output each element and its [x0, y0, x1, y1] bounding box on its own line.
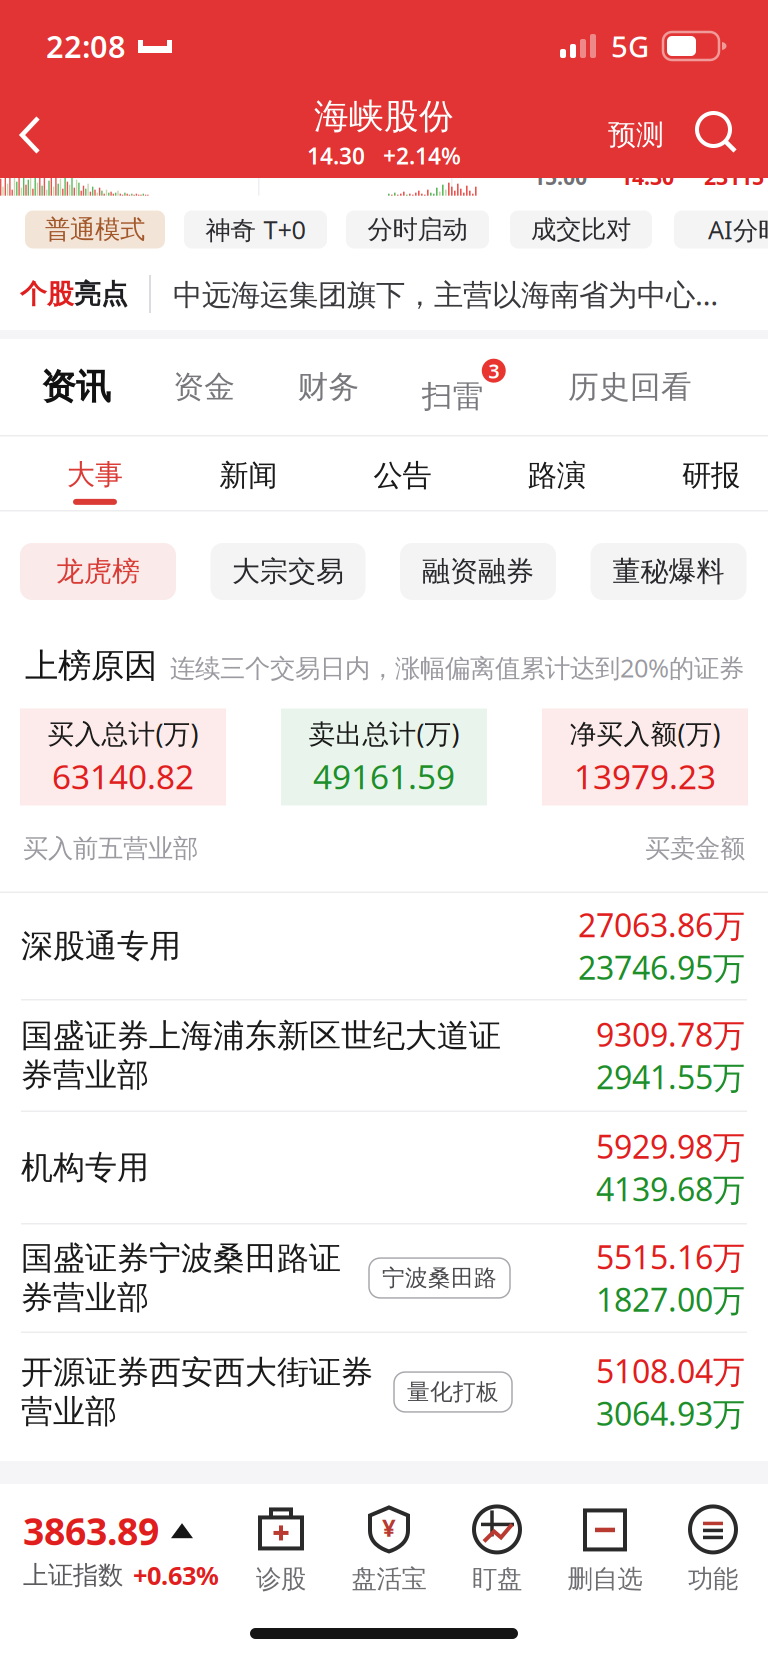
staticText: 4139.68万	[596, 1167, 745, 1210]
button[interactable]: 资金	[173, 368, 235, 406]
button[interactable]: 董秘爆料	[590, 543, 746, 600]
staticText: 14.30	[620, 163, 674, 191]
staticText: 5108.04万	[596, 1349, 745, 1392]
button[interactable]: Search	[694, 92, 744, 178]
button[interactable]: 研报	[682, 436, 740, 493]
staticText: 22:08	[46, 26, 126, 66]
staticText: ¥	[382, 1511, 396, 1543]
staticText: 15.00	[533, 163, 587, 191]
staticText: AI分时	[708, 213, 768, 246]
button[interactable]: 成交比对	[510, 210, 652, 248]
staticText: 神奇 T+0	[205, 213, 305, 246]
staticText: 预测	[608, 118, 664, 152]
staticText: 上证指数	[23, 1560, 123, 1591]
staticText: 分时启动	[367, 214, 467, 245]
button[interactable]: 深股通专用	[0, 893, 768, 999]
button[interactable]: AI分时	[674, 210, 768, 248]
staticText: 5929.98万	[596, 1125, 745, 1167]
staticText: 亮点	[74, 278, 128, 310]
staticText: 3064.93万	[596, 1392, 745, 1434]
button[interactable]: 大事	[67, 436, 123, 505]
button[interactable]: 功能	[659, 1503, 767, 1594]
staticText: 23115	[704, 163, 764, 191]
staticText: 63140.82	[52, 754, 194, 798]
staticText: 大事	[67, 457, 123, 492]
staticText: 27063.86万	[578, 903, 745, 946]
staticText: 个股	[20, 278, 74, 310]
staticText: 大宗交易	[232, 554, 344, 589]
staticText: 开源证券西安西大街证券营业部	[21, 1353, 373, 1431]
button[interactable]: 国盛证券上海浦东新区世纪大道证券营业部	[0, 1000, 768, 1110]
staticText: 盘活宝	[351, 1563, 426, 1594]
staticText: 宁波桑田路	[382, 1264, 497, 1292]
staticText: 资金	[173, 368, 235, 406]
button[interactable]: 机构专用	[0, 1112, 768, 1223]
button[interactable]: 盯盘	[443, 1503, 551, 1594]
staticText: 盯盘	[472, 1563, 522, 1594]
staticText: 买入前五营业部	[23, 833, 198, 864]
button[interactable]: 预测	[600, 92, 672, 178]
staticText: 14.30	[307, 141, 365, 171]
staticText: 新闻	[219, 457, 277, 493]
staticText: 买卖金额	[645, 833, 745, 864]
button[interactable]: 路演	[528, 436, 586, 493]
staticText: 国盛证券上海浦东新区世纪大道证券营业部	[21, 1016, 501, 1095]
staticText: 净买入额(万)	[569, 716, 720, 751]
button[interactable]: Back	[0, 92, 62, 178]
button[interactable]: 龙虎榜	[20, 543, 176, 600]
staticText: +2.14%	[383, 141, 461, 171]
button[interactable]: 分时启动	[346, 210, 489, 248]
staticText: 海峡股份	[314, 95, 454, 138]
button[interactable]: 新闻	[219, 436, 277, 493]
button[interactable]: 国盛证券宁波桑田路证券营业部	[0, 1224, 768, 1331]
button[interactable]: 历史回看	[568, 368, 692, 406]
staticText: 49161.59	[313, 754, 455, 798]
staticText: 功能	[688, 1563, 738, 1594]
staticText: 历史回看	[568, 368, 692, 406]
button[interactable]: 诊股	[227, 1503, 335, 1594]
staticText: 买入总计(万)	[47, 716, 198, 751]
staticText: 卖出总计(万)	[308, 716, 459, 751]
staticText: 中远海运集团旗下，主营以海南省为中心…	[173, 274, 718, 313]
button[interactable]: 神奇 T+0	[184, 210, 327, 248]
staticText: 国盛证券宁波桑田路证券营业部	[21, 1239, 341, 1317]
staticText: +0.63%	[133, 1558, 219, 1592]
staticText: 3	[488, 357, 499, 384]
staticText: 融资融券	[422, 554, 534, 589]
staticText: 研报	[682, 457, 740, 493]
button[interactable]: 扫雷	[422, 359, 506, 415]
staticText: 23746.95万	[578, 946, 745, 988]
staticText: 删自选	[567, 1563, 642, 1594]
button[interactable]: ¥	[335, 1503, 443, 1594]
staticText: 龙虎榜	[56, 554, 140, 589]
staticText: 3863.89	[23, 1506, 159, 1555]
staticText: 5G	[611, 26, 649, 65]
staticText: 连续三个交易日内，涨幅偏离值累计达到20%的证券	[170, 651, 744, 684]
staticText: 成交比对	[531, 214, 631, 245]
staticText: 2941.55万	[596, 1055, 745, 1098]
staticText: 财务	[297, 368, 359, 406]
staticText: 诊股	[256, 1563, 306, 1594]
button[interactable]: 融资融券	[400, 543, 556, 600]
staticText: 扫雷	[422, 378, 484, 415]
staticText: 深股通专用	[21, 926, 181, 966]
button[interactable]: 开源证券西安西大街证券营业部	[0, 1333, 768, 1451]
staticText: 资讯	[41, 366, 111, 408]
staticText: 上榜原因	[25, 645, 157, 686]
staticText: 13979.23	[574, 754, 716, 798]
button[interactable]: 资讯	[41, 366, 111, 408]
button[interactable]: 公告	[373, 436, 431, 493]
staticText: 1827.00万	[596, 1278, 745, 1320]
button[interactable]: 财务	[297, 368, 359, 406]
button[interactable]: 删自选	[551, 1503, 659, 1594]
staticText: 董秘爆料	[612, 554, 724, 589]
staticText: 5515.16万	[596, 1235, 745, 1278]
staticText: 公告	[373, 457, 431, 493]
staticText: 普通模式	[45, 214, 145, 245]
staticText: 量化打板	[407, 1378, 499, 1406]
staticText: 9309.78万	[596, 1013, 745, 1055]
staticText: 路演	[528, 457, 586, 493]
button[interactable]: 大宗交易	[210, 543, 365, 600]
button[interactable]: 普通模式	[25, 210, 165, 248]
staticText: 机构专用	[21, 1148, 149, 1187]
